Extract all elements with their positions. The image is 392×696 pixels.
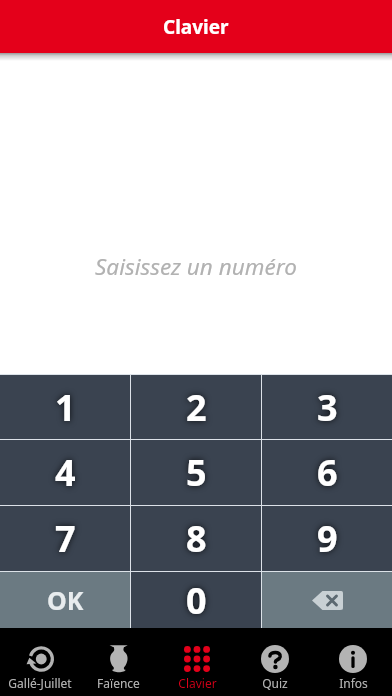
button[interactable]: OK <box>0 572 130 628</box>
button[interactable]: Faïence <box>79 628 158 696</box>
staticText: Infos <box>339 675 368 691</box>
button[interactable]: 0 <box>131 572 261 628</box>
staticText: 1 <box>55 383 76 432</box>
staticText: 4 <box>55 448 76 497</box>
button[interactable]: 6 <box>262 440 392 505</box>
button[interactable]: Quiz <box>236 628 314 696</box>
staticText: Saisissez un numéro <box>95 251 297 282</box>
staticText: 7 <box>55 514 76 563</box>
staticText: 6 <box>317 448 338 497</box>
staticText: 8 <box>186 514 207 563</box>
button[interactable]: 3 <box>262 375 392 439</box>
button[interactable]: 7 <box>0 506 130 571</box>
staticText: Gallé-Juillet <box>8 675 72 691</box>
staticText: 2 <box>186 383 207 432</box>
button[interactable]: 8 <box>131 506 261 571</box>
staticText: Faïence <box>97 675 140 691</box>
staticText: Clavier <box>178 675 217 691</box>
button[interactable]: 4 <box>0 440 130 505</box>
staticText: Quiz <box>262 675 288 691</box>
staticText: 3 <box>317 383 338 432</box>
staticText: Clavier <box>163 14 229 40</box>
button[interactable]: 9 <box>262 506 392 571</box>
staticText: 5 <box>186 448 207 497</box>
button[interactable]: 1 <box>0 375 130 439</box>
staticText: OK <box>47 583 84 617</box>
button[interactable]: 2 <box>131 375 261 439</box>
button[interactable]: Gallé-Juillet <box>0 628 79 696</box>
button[interactable]: Infos <box>314 628 392 696</box>
button[interactable]: Clavier <box>158 628 236 696</box>
staticText: 9 <box>317 514 338 563</box>
button[interactable]: Effacer <box>262 572 392 628</box>
staticText: 0 <box>186 576 207 625</box>
button[interactable]: 5 <box>131 440 261 505</box>
